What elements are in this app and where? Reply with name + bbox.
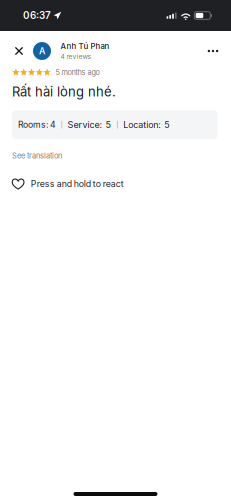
button[interactable]: Close <box>8 37 30 65</box>
staticText: Press and hold to react <box>31 178 124 189</box>
button[interactable]: Press and hold to react <box>12 174 219 193</box>
staticText: See translation <box>12 151 62 160</box>
button[interactable]: See translation <box>12 147 219 164</box>
staticText: Rất hài lòng nhé. <box>12 84 116 100</box>
staticText: 5 months ago <box>55 68 99 77</box>
staticText: A <box>39 46 45 56</box>
staticText: Service: 5 <box>68 119 112 130</box>
staticText: Rooms: 4 <box>18 119 56 130</box>
staticText: Anh Tú Phan <box>60 41 109 51</box>
staticText: 06:37 <box>23 10 51 21</box>
button[interactable]: More options <box>201 38 225 64</box>
staticText: Location: 5 <box>123 119 169 130</box>
staticText: 4 reviews <box>60 52 91 61</box>
